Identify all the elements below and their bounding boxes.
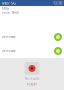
staticText: Inter SG xyxy=(2,0,16,6)
staticText: Item name xyxy=(2,35,16,39)
staticText: Try again xyxy=(26,82,37,86)
staticText: No results xyxy=(25,77,39,80)
staticText: Shop xyxy=(12,11,19,14)
staticText: Home xyxy=(2,11,10,14)
staticText: Item name xyxy=(2,49,16,53)
staticText: Etsy xyxy=(2,5,9,11)
staticText: 12:30 xyxy=(53,0,62,6)
